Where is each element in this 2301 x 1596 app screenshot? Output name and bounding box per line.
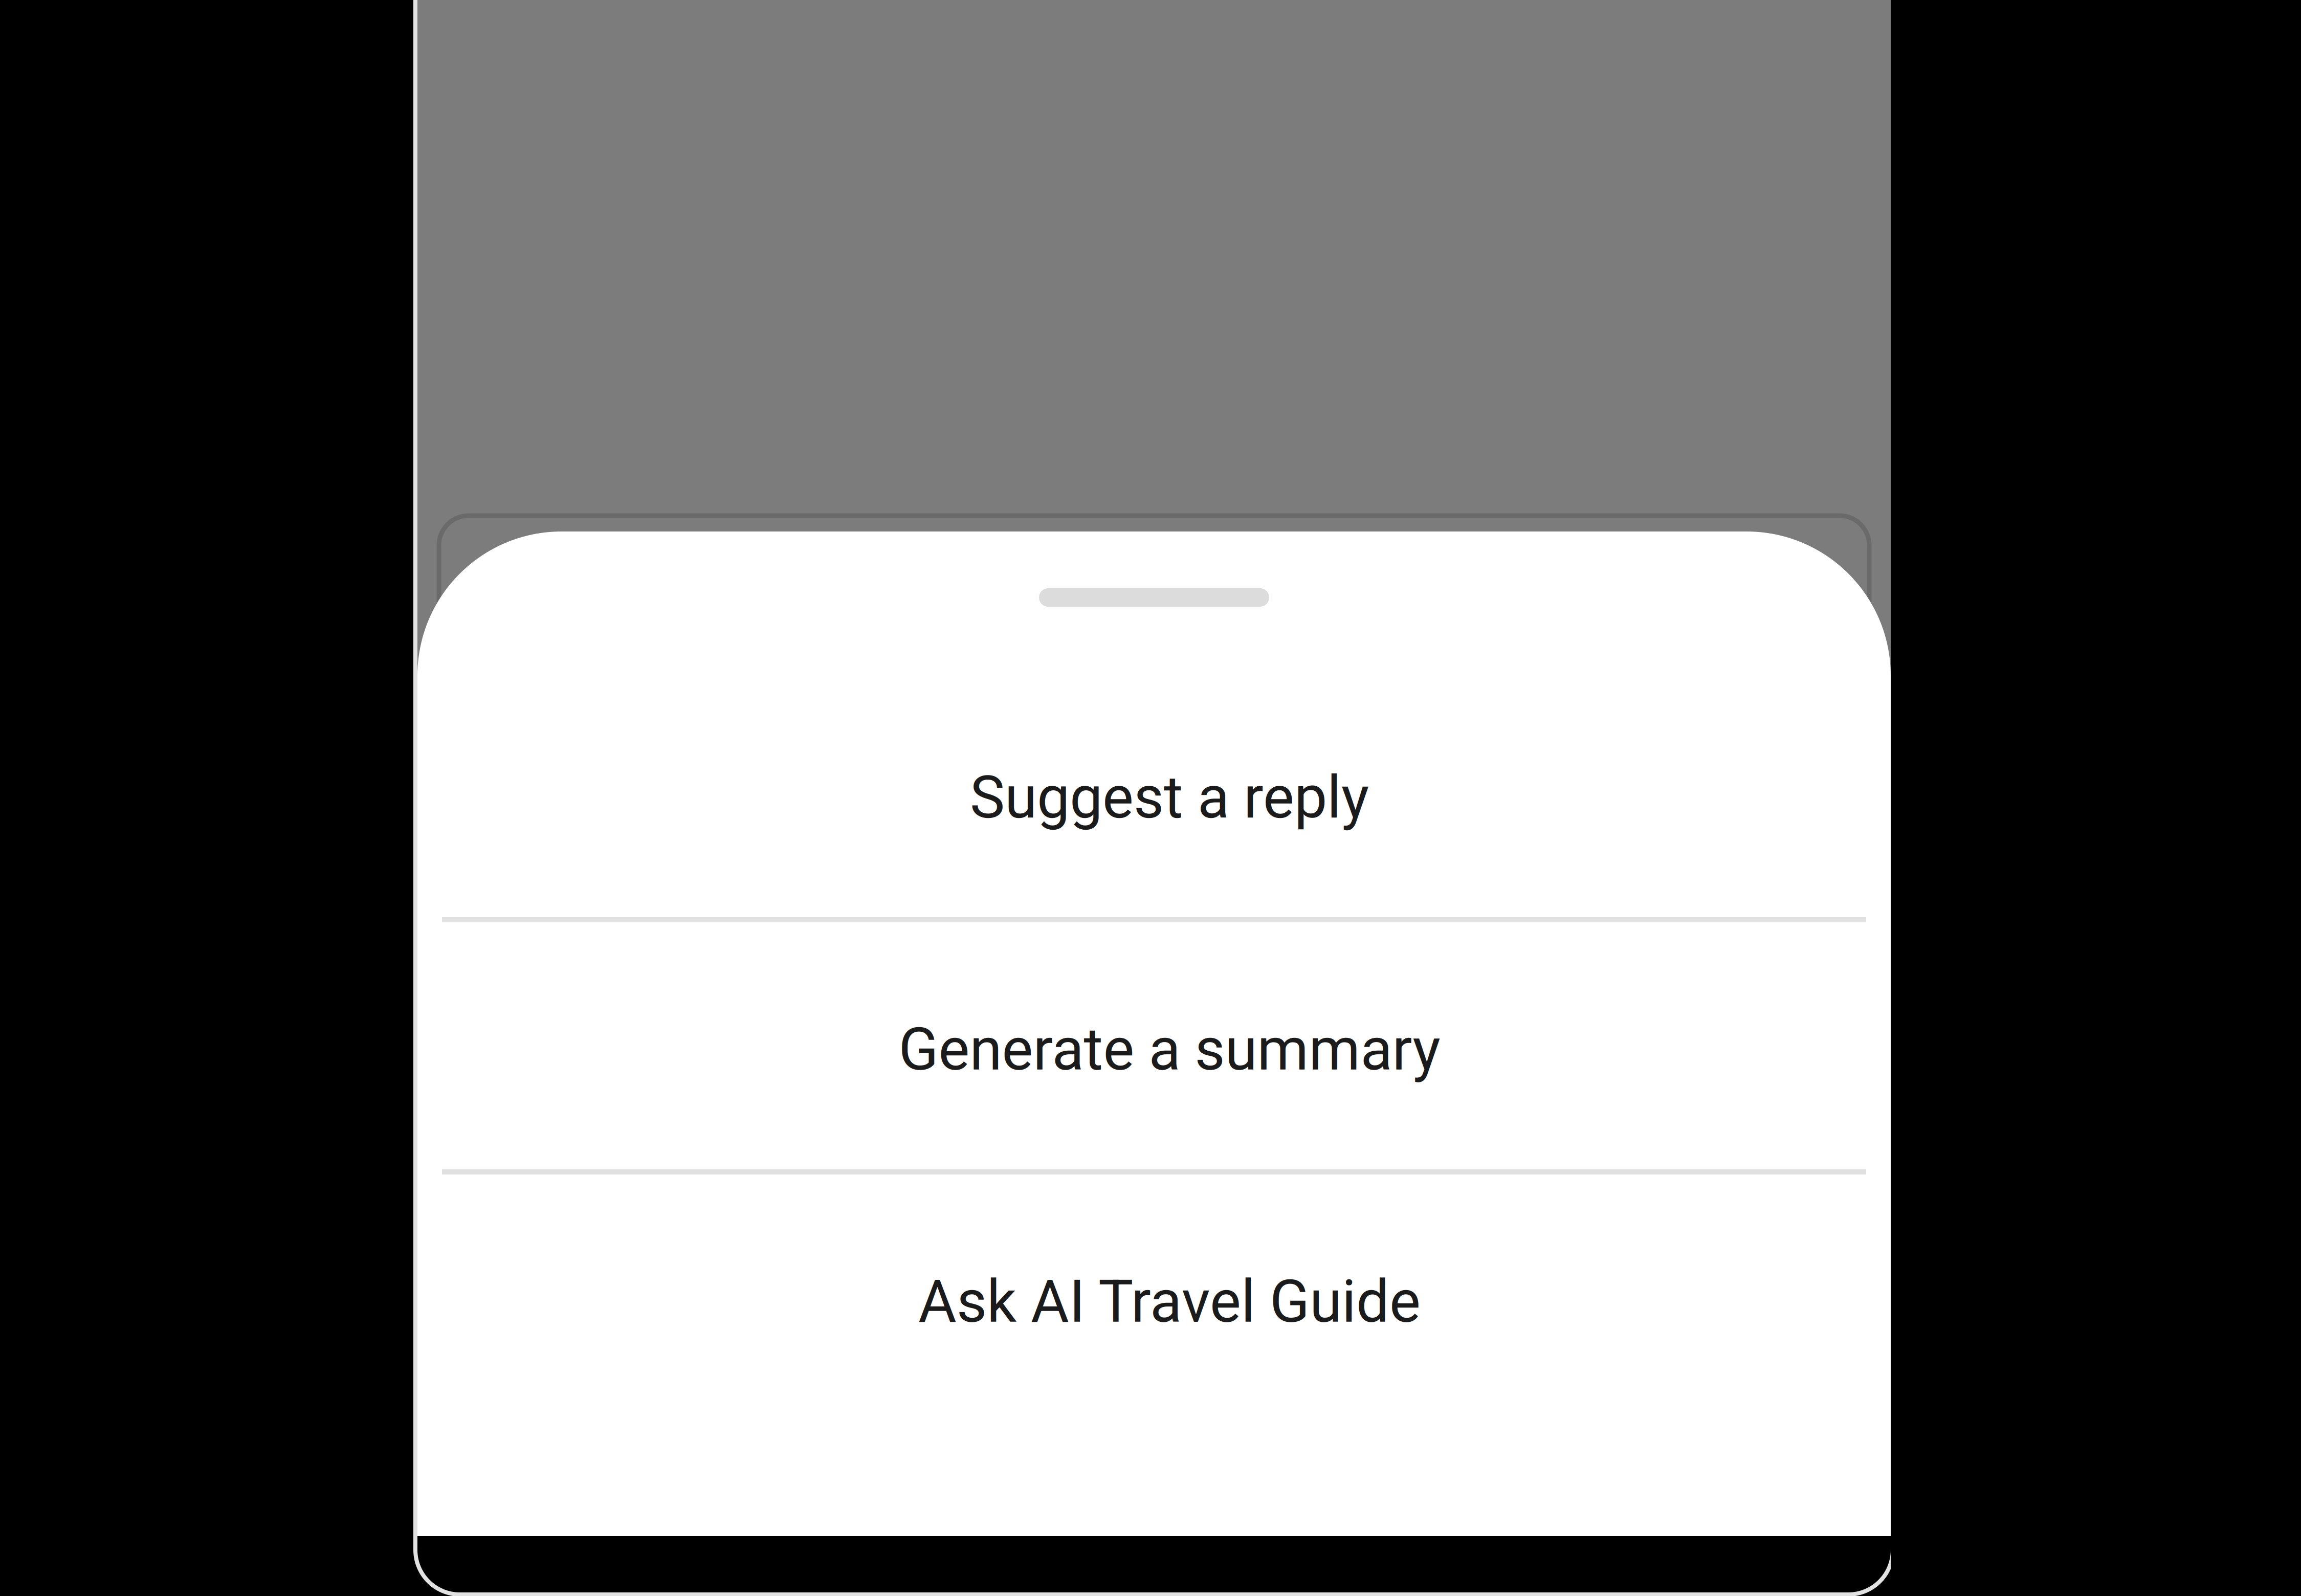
button[interactable]: Ask AI Travel Guide — [448, 1176, 1891, 1428]
staticText: Generate a summary — [899, 1015, 1440, 1084]
staticText: Suggest a reply — [970, 763, 1369, 832]
button[interactable]: Generate a summary — [448, 923, 1891, 1176]
button[interactable]: Suggest a reply — [448, 672, 1891, 923]
staticText: Ask AI Travel Guide — [918, 1267, 1421, 1336]
